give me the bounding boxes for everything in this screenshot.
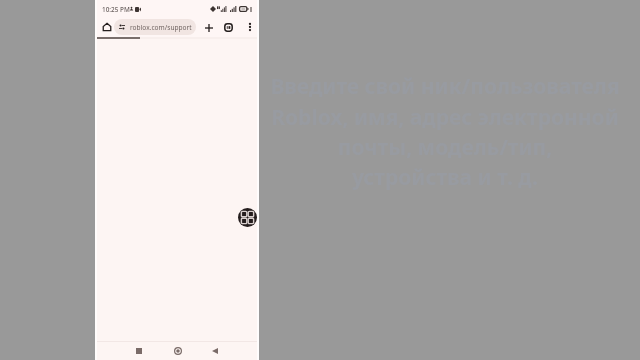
staticText: roblox.com/support [130, 23, 192, 32]
button[interactable]: Back [207, 343, 223, 359]
button[interactable]: Switch tabs [221, 20, 236, 35]
button[interactable]: Apps [238, 208, 257, 227]
button[interactable]: roblox.com/support [114, 19, 196, 35]
button[interactable]: Home [170, 343, 186, 359]
staticText: 10:25 PM [102, 5, 130, 14]
button[interactable]: More options [243, 20, 256, 33]
button[interactable]: Home [100, 20, 114, 34]
button[interactable]: New tab [201, 20, 216, 35]
button[interactable]: Recent apps [131, 343, 147, 359]
